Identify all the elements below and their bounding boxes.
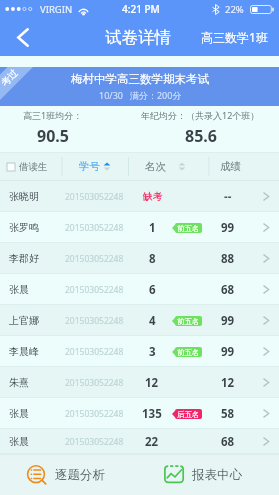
staticText: 10/30 满分：200分 (99, 89, 182, 101)
staticText: 88 (221, 251, 235, 267)
button[interactable]: 上官娜 (0, 305, 279, 336)
staticText: 学号 (79, 160, 100, 173)
staticText: 张晨 (9, 283, 29, 296)
staticText: 朱熹 (9, 376, 29, 389)
staticText: 4 (149, 313, 156, 329)
staticText: 201503052248 (65, 253, 124, 265)
staticText: 8 (149, 251, 156, 267)
staticText: 201503052248 (65, 315, 124, 327)
staticText: -- (224, 189, 232, 205)
staticText: 201503052248 (65, 436, 124, 448)
staticText: 年纪均分：（共录入12个班） (141, 109, 260, 121)
button[interactable]: Back (0, 18, 46, 56)
staticText: VIRGIN (40, 3, 73, 16)
staticText: 缺考 (143, 191, 162, 203)
staticText: 4:21 PM (122, 2, 160, 16)
staticText: 报表中心 (192, 467, 242, 483)
staticText: 前五名 (177, 348, 200, 357)
button[interactable]: 朱熹 (0, 367, 279, 398)
staticText: 上官娜 (9, 314, 39, 327)
staticText: 68 (221, 434, 235, 450)
staticText: 前五名 (177, 224, 200, 233)
staticText: 22 (145, 434, 159, 450)
button[interactable]: 李晨峰 (0, 336, 279, 367)
button[interactable]: 张晨 (0, 398, 279, 429)
staticText: 201503052248 (65, 284, 124, 296)
staticText: 试卷详情 (105, 27, 171, 48)
staticText: 借读生 (19, 161, 48, 173)
staticText: 成绩 (220, 160, 241, 173)
staticText: 201503052248 (65, 222, 124, 234)
staticText: 58 (221, 406, 235, 422)
staticText: 85.6 (185, 125, 217, 147)
staticText: 1 (149, 220, 156, 236)
staticText: 99 (221, 313, 235, 329)
button[interactable]: 李郡好 (0, 243, 279, 274)
staticText: 12 (221, 375, 235, 391)
staticText: 梅村中学高三数学期末考试 (71, 72, 209, 86)
staticText: 201503052248 (65, 408, 124, 420)
staticText: 99 (221, 344, 235, 360)
staticText: 高三1班均分： (23, 109, 83, 121)
staticText: 高三数学1班 (201, 29, 268, 45)
staticText: 201503052248 (65, 191, 124, 203)
button[interactable]: 张晨 (0, 429, 279, 454)
staticText: 3 (149, 344, 156, 360)
staticText: 李郡好 (9, 252, 39, 265)
staticText: 22% (225, 3, 244, 16)
staticText: 逐题分析 (55, 467, 105, 483)
staticText: 90.5 (37, 125, 69, 147)
staticText: 68 (221, 282, 235, 298)
button[interactable]: 学号 (79, 152, 111, 181)
staticText: 12 (145, 375, 159, 391)
staticText: 李晨峰 (9, 345, 39, 358)
staticText: 张晨 (9, 407, 29, 420)
button[interactable]: 报表中心 (139, 454, 279, 495)
staticText: 201503052248 (65, 346, 124, 358)
staticText: 201503052248 (65, 377, 124, 389)
button[interactable]: 张罗鸣 (0, 212, 279, 243)
button[interactable]: 张晨 (0, 274, 279, 305)
staticText: 后五名 (177, 410, 200, 419)
staticText: 99 (221, 220, 235, 236)
staticText: 张罗鸣 (9, 221, 39, 234)
staticText: 6 (149, 282, 156, 298)
staticText: 考过 (0, 67, 20, 89)
staticText: 135 (142, 406, 162, 422)
staticText: 前五名 (177, 317, 200, 326)
button[interactable]: 借读生 (0, 152, 62, 181)
staticText: 张晓明 (9, 190, 39, 203)
button[interactable]: 名次 (145, 152, 186, 181)
staticText: 名次 (145, 160, 166, 173)
button[interactable]: 张晓明 (0, 181, 279, 212)
staticText: 张晨 (9, 435, 29, 448)
button[interactable]: 逐题分析 (0, 454, 139, 495)
